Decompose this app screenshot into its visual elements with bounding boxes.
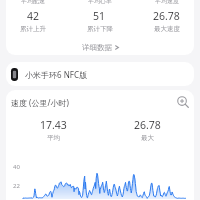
staticText: 最大速度 (154, 25, 180, 33)
button[interactable]: 详细数据 (78, 42, 123, 53)
button[interactable]: Zoom in (175, 94, 191, 110)
staticText: 平均心率 (88, 0, 112, 5)
staticText: 平均配速 (21, 0, 45, 5)
staticText: 51 (93, 9, 106, 23)
staticText: 22 (13, 182, 20, 190)
staticText: 平均速度 (155, 0, 179, 5)
button[interactable]: 小米手环6 NFC版 (6, 62, 194, 86)
staticText: 累计下降 (87, 25, 113, 33)
staticText: 累计上升 (20, 25, 46, 33)
staticText: 详细数据 (82, 43, 112, 52)
staticText: 平均 (47, 134, 60, 142)
staticText: 42 (27, 9, 40, 23)
staticText: 小米手环6 NFC版 (25, 69, 87, 80)
staticText: 26.78 (134, 118, 161, 132)
staticText: 17.43 (40, 118, 67, 132)
staticText: 速度 (公里/小时) (11, 97, 69, 108)
staticText: 最大 (141, 134, 154, 142)
staticText: 40 (13, 163, 20, 171)
staticText: 26.78 (153, 9, 180, 23)
